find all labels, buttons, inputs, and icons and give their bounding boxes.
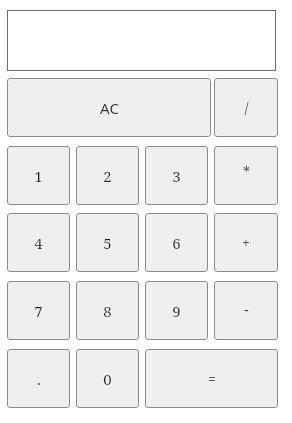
button[interactable]: 6	[145, 213, 208, 272]
button[interactable]: -	[214, 281, 278, 340]
button[interactable]: 4	[7, 213, 70, 272]
button[interactable]: 7	[7, 281, 70, 340]
staticText: 3	[172, 166, 181, 186]
staticText: 5	[103, 233, 112, 253]
button[interactable]: *	[214, 146, 278, 205]
staticText: 6	[172, 233, 181, 253]
button[interactable]: 0	[76, 349, 139, 408]
button[interactable]: 5	[76, 213, 139, 272]
button[interactable]: 8	[76, 281, 139, 340]
button[interactable]: =	[145, 349, 278, 408]
staticText: +	[242, 233, 250, 252]
staticText: AC	[100, 98, 119, 118]
staticText: .	[37, 369, 41, 389]
button[interactable]: 2	[76, 146, 139, 205]
staticText: /	[244, 98, 249, 117]
staticText: 8	[103, 301, 112, 321]
button[interactable]: 9	[145, 281, 208, 340]
button[interactable]: /	[214, 78, 278, 137]
staticText: 7	[34, 301, 43, 321]
button[interactable]: 1	[7, 146, 70, 205]
staticText: 1	[34, 166, 43, 186]
staticText: *	[243, 162, 250, 181]
staticText: -	[244, 300, 249, 319]
button[interactable]: .	[7, 349, 70, 408]
staticText: =	[208, 369, 216, 388]
button[interactable]	[7, 10, 276, 71]
staticText: 4	[34, 233, 43, 253]
button[interactable]: AC	[7, 78, 211, 137]
button[interactable]: +	[214, 213, 278, 272]
button[interactable]: 3	[145, 146, 208, 205]
staticText: 9	[172, 301, 181, 321]
staticText: 0	[103, 369, 112, 389]
staticText: 2	[103, 166, 112, 186]
